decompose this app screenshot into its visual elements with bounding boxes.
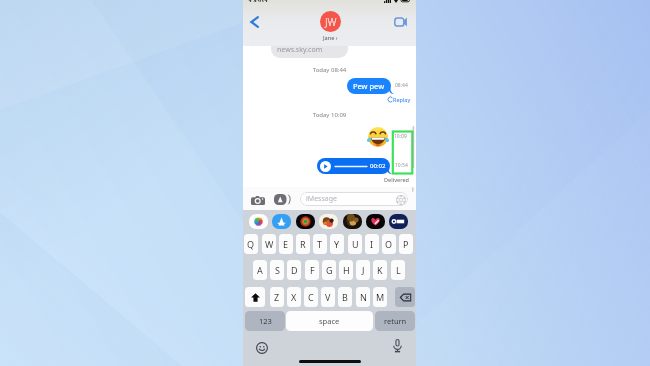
- button[interactable]: G: [322, 260, 336, 280]
- button[interactable]: Shift: [245, 287, 265, 307]
- button[interactable]: D: [287, 260, 301, 280]
- staticText: 123: [259, 316, 272, 326]
- button[interactable]: App Store: [272, 191, 291, 207]
- button[interactable]: O: [382, 234, 396, 254]
- button[interactable]: Back: [245, 13, 263, 31]
- button[interactable]: news.sky.com: [271, 46, 348, 58]
- staticText: W: [265, 238, 274, 250]
- button[interactable]: Camera: [248, 192, 268, 208]
- button[interactable]: X: [287, 287, 301, 307]
- button[interactable]: U: [348, 234, 362, 254]
- staticText: K: [377, 264, 383, 276]
- button[interactable]: 00:02: [317, 158, 390, 174]
- button[interactable]: App: [249, 214, 268, 229]
- button[interactable]: Pew pew: [347, 78, 391, 94]
- staticText: X: [291, 291, 297, 303]
- button[interactable]: Z: [270, 287, 284, 307]
- staticText: Today 10:09: [243, 111, 416, 119]
- staticText: JW: [325, 15, 337, 29]
- staticText: N: [360, 291, 367, 303]
- staticText: V: [325, 291, 331, 303]
- staticText: Jane ›: [323, 34, 338, 41]
- staticText: O: [385, 238, 393, 250]
- button[interactable]: P: [399, 234, 413, 254]
- staticText: H: [343, 264, 350, 276]
- staticText: Replay: [393, 96, 411, 103]
- button[interactable]: App: [272, 214, 291, 229]
- button[interactable]: H: [339, 260, 353, 280]
- button[interactable]: M: [373, 287, 387, 307]
- button[interactable]: App: [366, 214, 385, 229]
- staticText: Y: [334, 238, 340, 250]
- button[interactable]: iMessage: [300, 192, 408, 206]
- staticText: M: [376, 291, 385, 303]
- button[interactable]: V: [321, 287, 335, 307]
- staticText: I: [370, 238, 374, 250]
- staticText: T: [317, 238, 323, 250]
- button[interactable]: Dictate: [389, 338, 405, 354]
- button[interactable]: Y: [330, 234, 344, 254]
- staticText: G: [326, 264, 333, 276]
- button[interactable]: return: [375, 311, 415, 331]
- staticText: Pew pew: [353, 81, 385, 91]
- staticText: Z: [274, 291, 280, 303]
- staticText: L: [396, 264, 401, 276]
- button[interactable]: T: [313, 234, 327, 254]
- staticText: 14:01: [248, 0, 269, 2]
- button[interactable]: Emoji keyboard: [254, 340, 270, 356]
- button[interactable]: W: [262, 234, 276, 254]
- staticText: S: [275, 264, 280, 276]
- button[interactable]: E: [279, 234, 293, 254]
- staticText: B: [342, 291, 348, 303]
- staticText: 00:02: [370, 162, 386, 170]
- button[interactable]: App: [319, 214, 338, 229]
- button[interactable]: L: [391, 260, 405, 280]
- staticText: P: [403, 238, 409, 250]
- staticText: E: [283, 238, 289, 250]
- staticText: return: [384, 316, 407, 326]
- staticText: Today 08:44: [243, 66, 416, 74]
- button[interactable]: F: [305, 260, 319, 280]
- button[interactable]: K: [373, 260, 387, 280]
- staticText: Delivered: [384, 176, 409, 183]
- staticText: A: [257, 264, 263, 276]
- button[interactable]: App: [343, 214, 362, 229]
- staticText: C: [308, 291, 314, 303]
- button[interactable]: space: [286, 311, 373, 331]
- button[interactable]: I: [365, 234, 379, 254]
- staticText: 10:09: [394, 133, 407, 140]
- button[interactable]: Record audio message: [396, 195, 406, 205]
- button[interactable]: S: [270, 260, 284, 280]
- staticText: D: [291, 264, 298, 276]
- staticText: iMessage: [306, 194, 337, 204]
- staticText: R: [300, 238, 306, 250]
- button[interactable]: Replay: [388, 96, 411, 103]
- button[interactable]: B: [338, 287, 352, 307]
- staticText: U: [352, 238, 359, 250]
- button[interactable]: R: [296, 234, 310, 254]
- staticText: news.sky.com: [277, 46, 323, 55]
- staticText: F: [310, 264, 315, 276]
- staticText: 10:54: [395, 162, 408, 169]
- button[interactable]: C: [304, 287, 318, 307]
- button[interactable]: FaceTime video call: [391, 13, 409, 31]
- staticText: space: [319, 316, 340, 326]
- button[interactable]: App: [389, 214, 408, 229]
- staticText: Q: [247, 238, 255, 250]
- button[interactable]: N: [356, 287, 370, 307]
- button[interactable]: App: [296, 214, 315, 229]
- button[interactable]: JW: [320, 11, 341, 39]
- button[interactable]: J: [356, 260, 370, 280]
- button[interactable]: A: [253, 260, 267, 280]
- button[interactable]: Q: [244, 234, 258, 254]
- staticText: 08:44: [395, 82, 408, 89]
- button[interactable]: 123: [245, 311, 285, 331]
- staticText: J: [362, 264, 365, 276]
- button[interactable]: Backspace: [395, 287, 415, 307]
